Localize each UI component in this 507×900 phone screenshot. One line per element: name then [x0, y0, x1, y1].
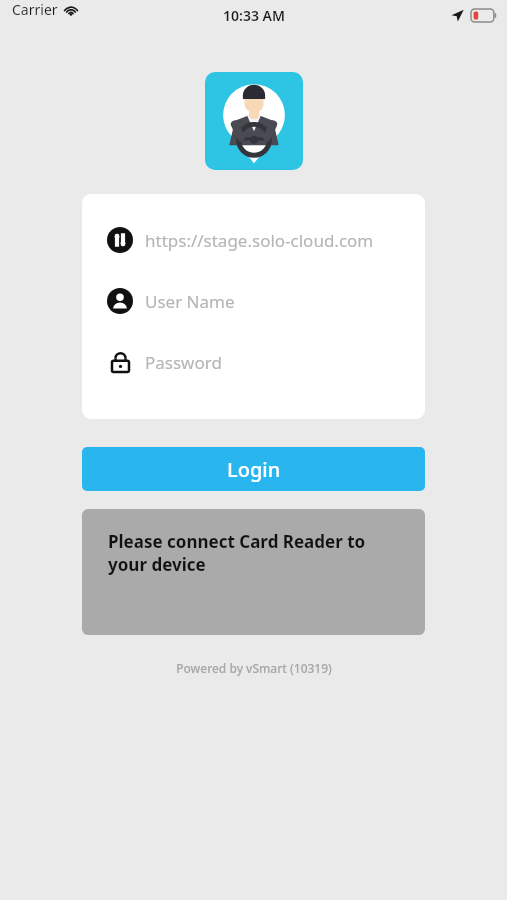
staticText: Carrier: [12, 0, 58, 19]
button[interactable]: Login: [82, 447, 425, 491]
staticText: User Name: [145, 290, 235, 313]
button[interactable]: User Name: [82, 285, 425, 317]
staticText: Please connect Card Reader to your devic…: [108, 530, 401, 576]
staticText: https://stage.solo-cloud.com: [145, 229, 374, 252]
staticText: Powered by vSmart (10319): [176, 660, 332, 676]
button[interactable]: Password: [82, 346, 425, 378]
staticText: 10:33 AM: [223, 6, 285, 25]
staticText: Login: [227, 456, 281, 483]
staticText: Password: [145, 351, 222, 374]
button[interactable]: https://stage.solo-cloud.com: [82, 224, 425, 256]
